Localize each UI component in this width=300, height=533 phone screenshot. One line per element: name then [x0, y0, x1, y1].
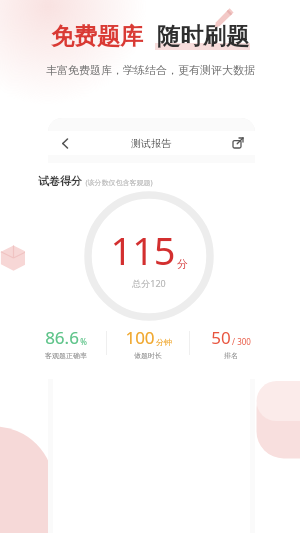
button[interactable]: 分享: [229, 134, 247, 152]
staticText: 3: [149, 348, 155, 360]
staticText: 客观题正确率: [45, 351, 87, 360]
staticText: 免费题库: [51, 22, 143, 51]
staticText: 100: [125, 326, 155, 349]
staticText: 50: [211, 326, 231, 349]
staticText: 错误: [180, 305, 192, 313]
staticText: 随时刷题: [157, 22, 249, 51]
staticText: 5: [228, 348, 234, 360]
staticText: %: [80, 336, 87, 347]
button[interactable]: 1: [61, 343, 83, 365]
staticText: 4: [188, 348, 194, 360]
staticText: 最近5次成绩: [135, 280, 169, 288]
staticText: 排名: [224, 351, 238, 360]
button[interactable]: 5: [220, 343, 242, 365]
staticText: 115: [110, 224, 176, 276]
staticText: 分钟: [156, 337, 172, 347]
staticText: 试卷得分: [38, 174, 82, 188]
staticText: 1: [69, 348, 75, 360]
staticText: 86.6: [45, 326, 79, 349]
button[interactable]: 100: [107, 326, 189, 360]
staticText: 总分120: [132, 277, 166, 289]
staticText: 丰富免费题库，学练结合，更有测评大数据: [46, 63, 255, 77]
staticText: 做题时长: [134, 351, 162, 360]
staticText: 单选题（共40题，40分）: [61, 325, 141, 335]
button[interactable]: 50: [190, 326, 272, 360]
button[interactable]: 86.6: [25, 326, 106, 360]
staticText: 正确: [155, 305, 167, 313]
button[interactable]: 3: [141, 343, 163, 365]
staticText: / 300: [232, 336, 251, 347]
staticText: (该分数仅包含客观题): [85, 178, 153, 188]
staticText: 测试报告: [131, 137, 171, 150]
button[interactable]: 返回: [56, 134, 74, 152]
staticText: 分: [177, 257, 188, 271]
